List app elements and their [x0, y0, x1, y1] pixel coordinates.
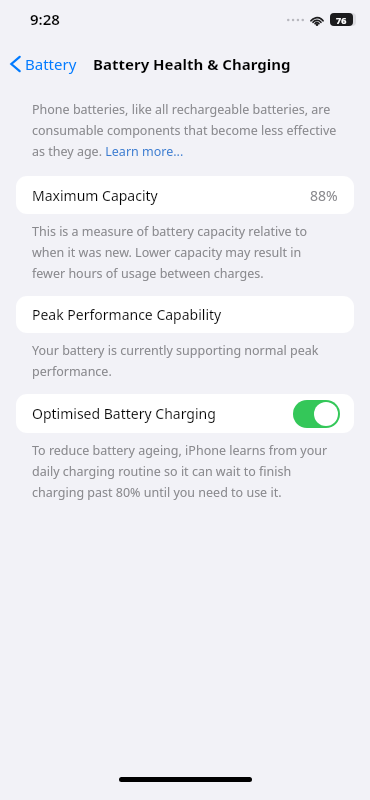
staticText: Phone batteries, like all rechargeable b… [32, 101, 342, 160]
button[interactable]: Peak Performance Capability [16, 296, 354, 333]
staticText: Battery Health & Charging [93, 54, 291, 74]
staticText: Maximum Capacity [32, 186, 158, 205]
staticText: Battery [25, 54, 77, 74]
staticText: 88% [310, 186, 338, 205]
staticText: Optimised Battery Charging [32, 404, 216, 423]
button[interactable]: Battery [0, 50, 83, 78]
button[interactable]: Maximum Capacity [16, 176, 354, 214]
button[interactable]: Optimised Battery Charging toggle [293, 400, 340, 428]
staticText: 76 [336, 14, 347, 26]
staticText: This is a measure of battery capacity re… [32, 223, 330, 282]
staticText: 9:28 [30, 9, 60, 29]
staticText: To reduce battery ageing, iPhone learns … [32, 442, 330, 501]
button[interactable]: Optimised Battery Charging [16, 394, 354, 433]
staticText: Peak Performance Capability [32, 305, 222, 324]
staticText: Your battery is currently supporting nor… [32, 342, 330, 380]
